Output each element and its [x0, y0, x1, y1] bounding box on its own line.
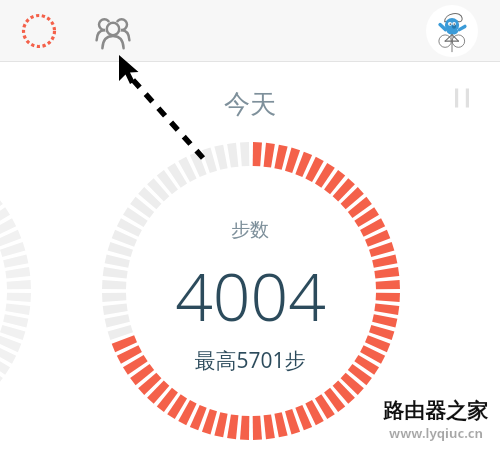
staticText: 今天 [224, 88, 276, 121]
button[interactable]: Friends [88, 6, 138, 56]
button[interactable]: Pause [446, 82, 478, 114]
staticText: 步数 [231, 218, 269, 242]
staticText: 4004 [175, 250, 326, 340]
staticText: 路由器之家 [383, 398, 488, 424]
button[interactable]: Profile [426, 5, 478, 57]
staticText: 最高5701步 [194, 346, 306, 375]
button[interactable]: Activity ring [16, 8, 62, 54]
staticText: www.lyqiuc.cn [389, 424, 483, 442]
